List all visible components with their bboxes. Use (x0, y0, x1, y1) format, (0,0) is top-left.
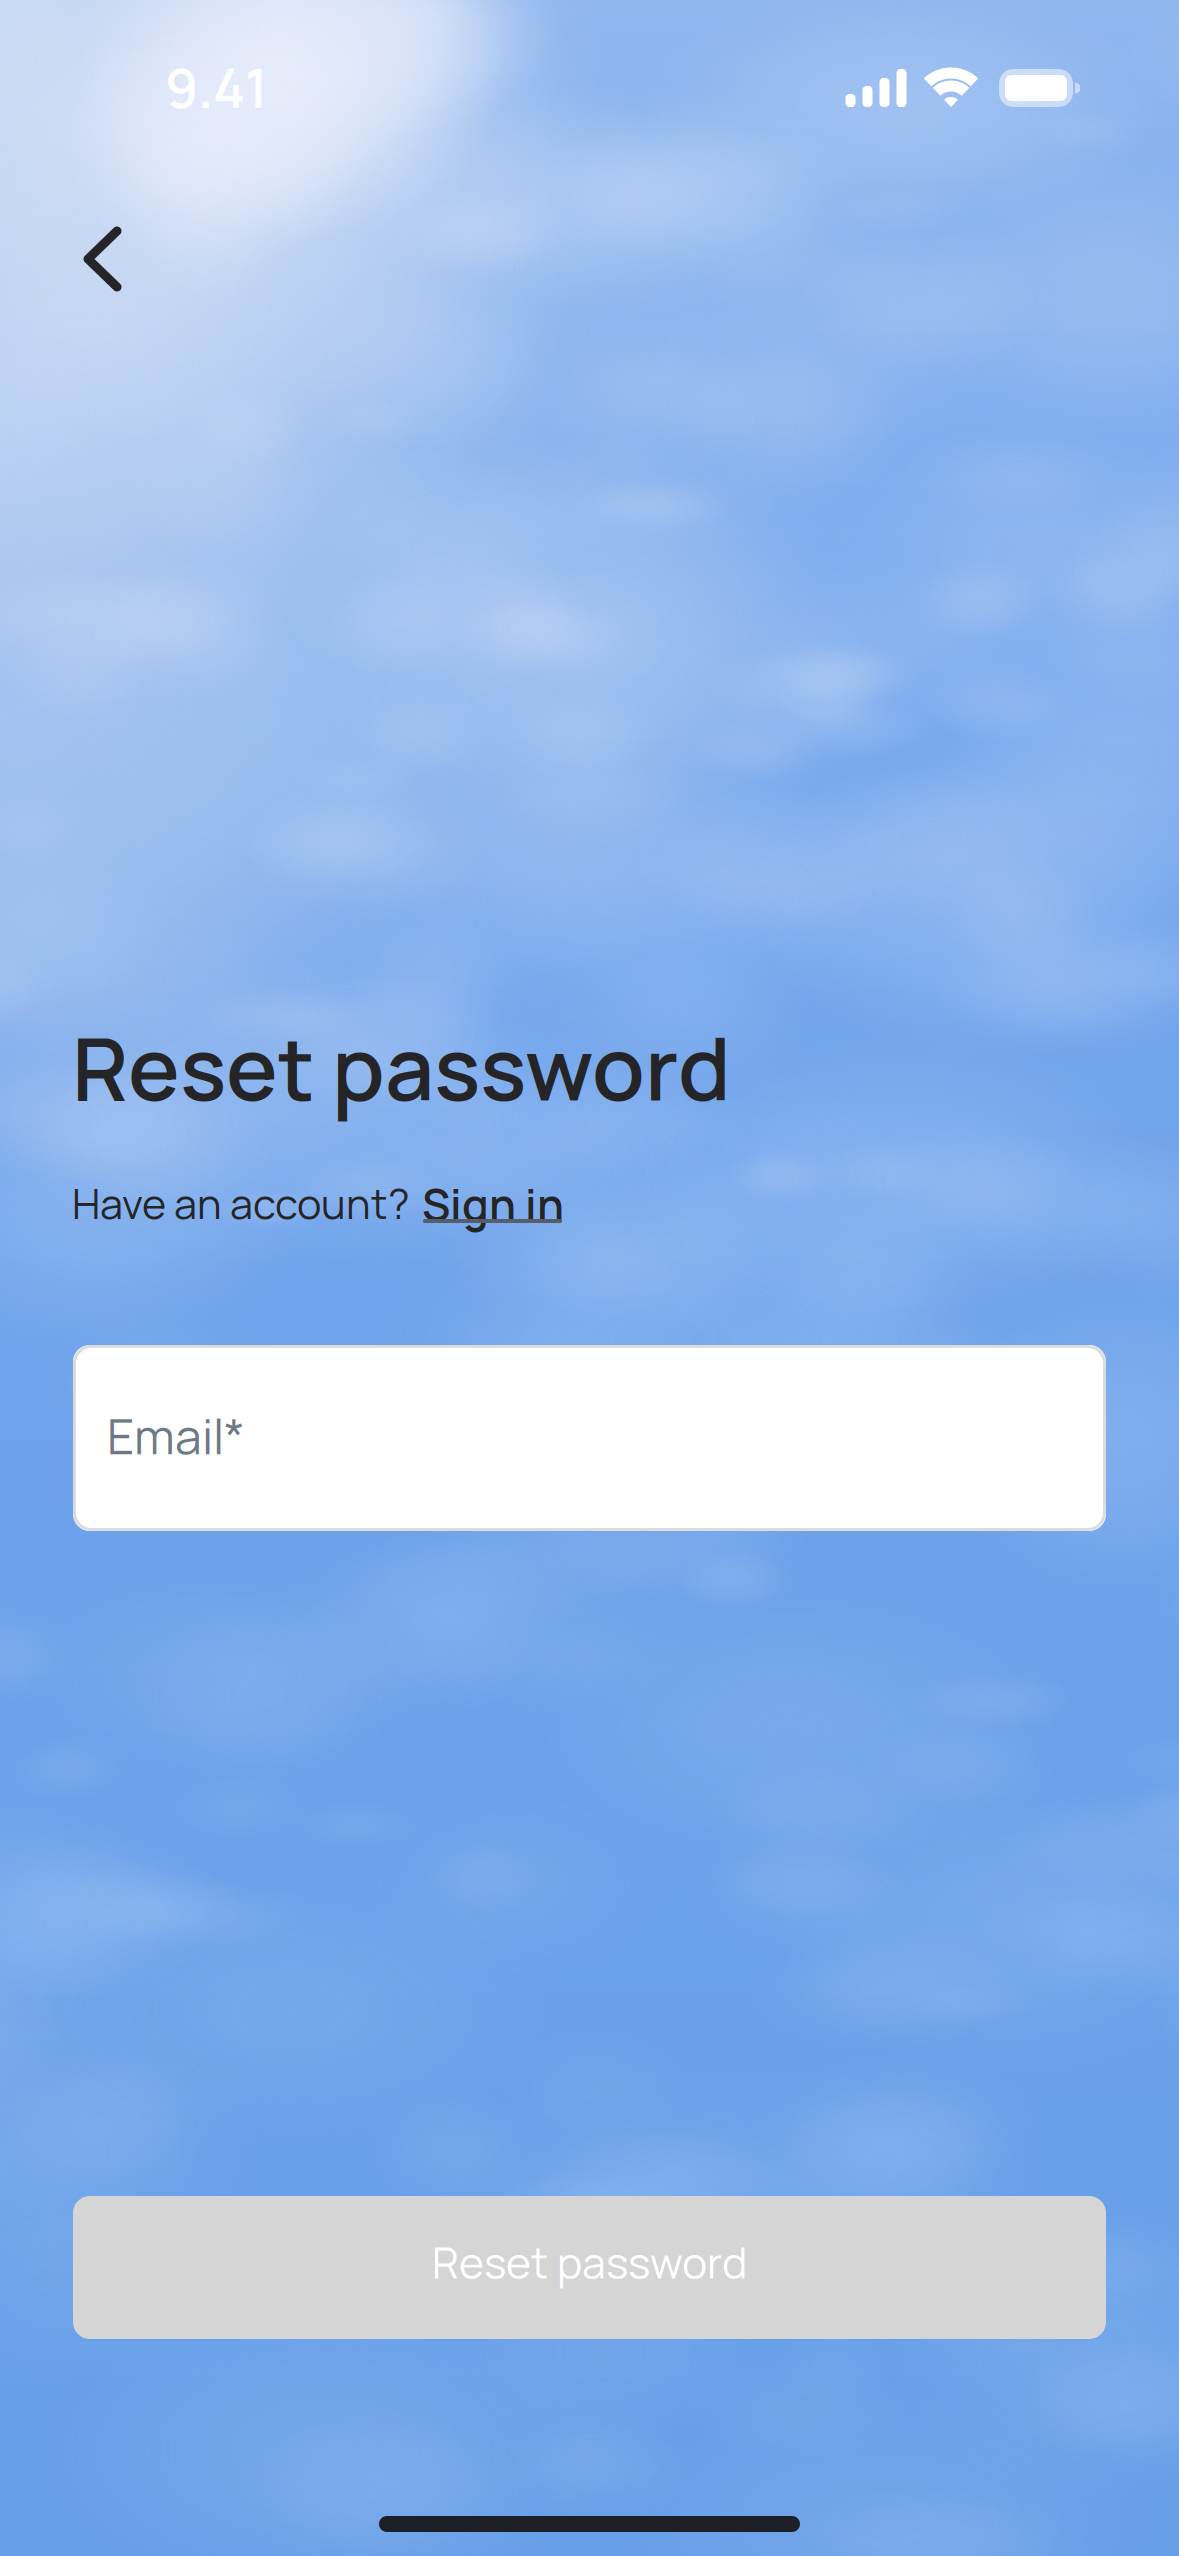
button[interactable]: Reset password (73, 2196, 1106, 2339)
staticText: Have an account? (72, 1175, 410, 1231)
button[interactable]: Email* (73, 1345, 1106, 1531)
button[interactable]: Back (43, 199, 163, 319)
staticText: Email* (107, 1403, 245, 1469)
staticText: 9.41 (165, 51, 268, 124)
staticText: Reset password (432, 2233, 747, 2291)
staticText: Reset password (72, 1008, 731, 1126)
staticText: Sign in (422, 1174, 564, 1234)
button[interactable]: Sign in (0, 0, 200, 70)
